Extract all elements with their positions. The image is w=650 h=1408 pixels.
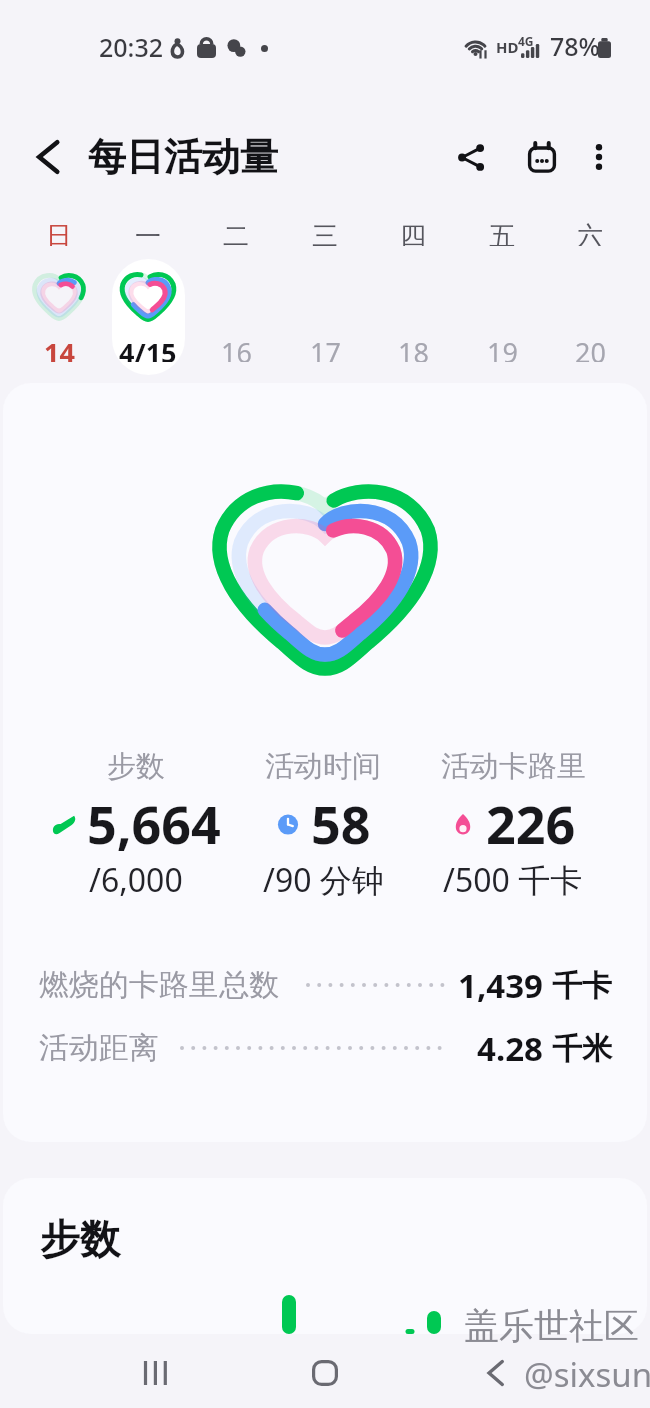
staticText: 四 [400,220,426,246]
staticText: 六 [577,220,603,246]
button[interactable]: Recent apps [124,1342,186,1404]
button[interactable]: 步数 [26,748,246,898]
staticText: 4/15 [119,334,177,362]
staticText: 一 [135,220,161,246]
button[interactable]: 日 [15,213,103,383]
staticText: 活动距离 [39,1029,159,1067]
staticText: 14 [44,334,75,362]
staticText: /500 千卡 [443,858,583,902]
staticText: 17 [310,334,341,362]
staticText: HD [496,37,519,57]
button[interactable]: 燃烧的卡路里总数 [39,957,612,1013]
staticText: 盖乐世社区 [464,1304,639,1348]
staticText: 活动卡路里 [441,748,586,785]
button[interactable]: Share [437,123,505,191]
button[interactable]: 活动时间 [213,748,433,898]
button[interactable]: Calendar [508,123,576,191]
staticText: 步数 [107,748,165,785]
button[interactable]: 六 [546,213,634,383]
button[interactable]: Back [14,123,82,191]
button[interactable]: 一 [104,213,192,383]
button[interactable]: Back [464,1342,526,1404]
staticText: 226 [486,788,576,859]
button[interactable]: 活动卡路里 [403,748,623,898]
staticText: 三 [312,220,338,246]
staticText: 5,664 [87,788,221,859]
staticText: 五 [489,220,515,246]
staticText: 1,439 [458,963,543,1008]
staticText: 日 [46,220,72,246]
staticText: 二 [223,220,249,246]
staticText: 4.28 [477,1026,543,1071]
staticText: 每日活动量 [88,133,278,181]
button[interactable]: 五 [458,213,546,383]
staticText: 16 [221,334,252,362]
staticText: 活动时间 [265,748,381,785]
staticText: /6,000 [89,858,183,902]
staticText: @sixsun [524,1352,650,1397]
staticText: 20 [575,334,606,362]
staticText: 步数 [40,1214,120,1264]
staticText: 18 [398,334,429,362]
button[interactable]: 二 [192,213,280,383]
staticText: /90 分钟 [263,858,384,902]
staticText: 58 [311,788,371,859]
staticText: 20:32 [99,30,164,64]
staticText: 千卡 [552,967,612,1005]
staticText: 千米 [552,1030,612,1068]
staticText: 19 [487,334,518,362]
staticText: 4G [518,33,534,49]
staticText: 燃烧的卡路里总数 [39,966,279,1004]
button[interactable]: 三 [281,213,369,383]
staticText: 78% [550,29,600,63]
button[interactable]: More options [565,123,633,191]
button[interactable]: Home [294,1342,356,1404]
button[interactable]: 活动距离 [39,1020,612,1076]
button[interactable]: 四 [369,213,457,383]
